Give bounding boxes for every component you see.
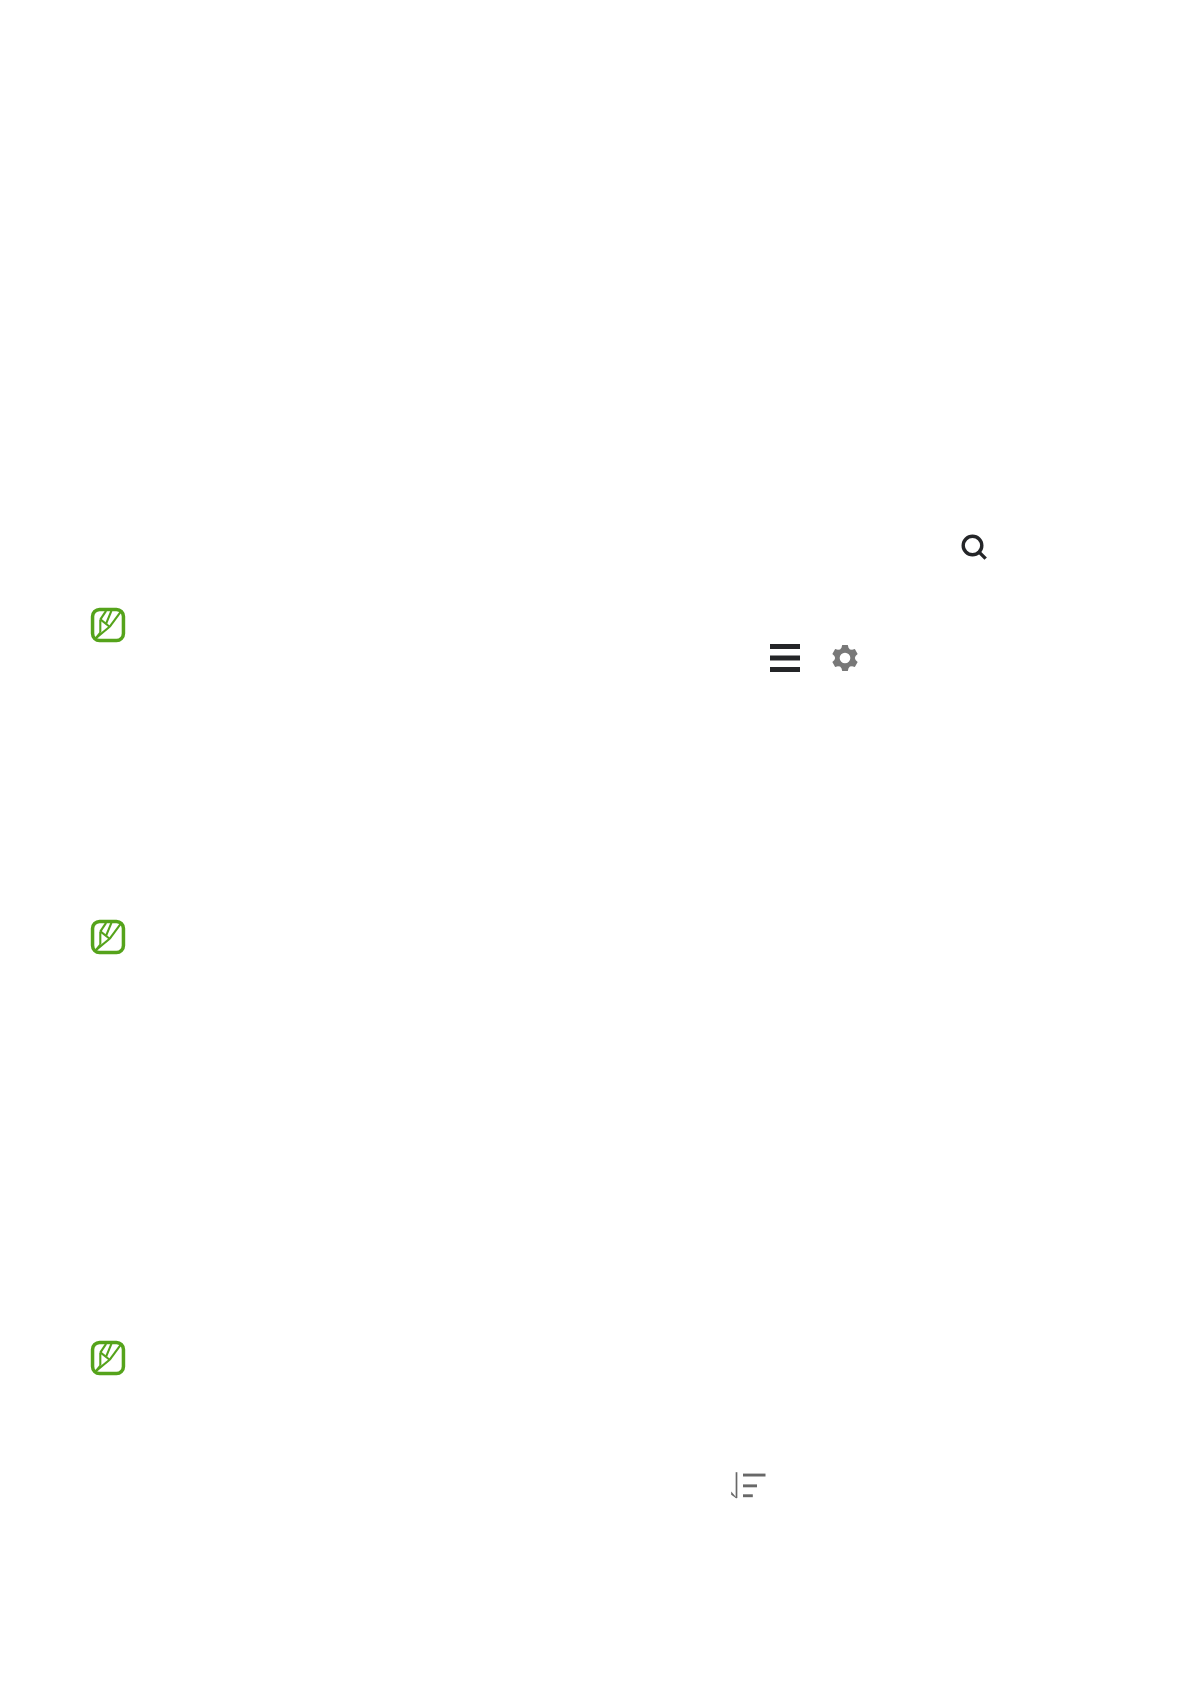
- button[interactable]: Sort: [722, 1463, 775, 1507]
- button[interactable]: Samsung Notes: [82, 911, 134, 963]
- button[interactable]: Menu: [761, 635, 809, 680]
- button[interactable]: Search: [952, 525, 1000, 573]
- button[interactable]: Samsung Notes: [82, 599, 134, 651]
- button[interactable]: Samsung Notes: [82, 1332, 134, 1384]
- button[interactable]: Settings: [823, 636, 867, 680]
